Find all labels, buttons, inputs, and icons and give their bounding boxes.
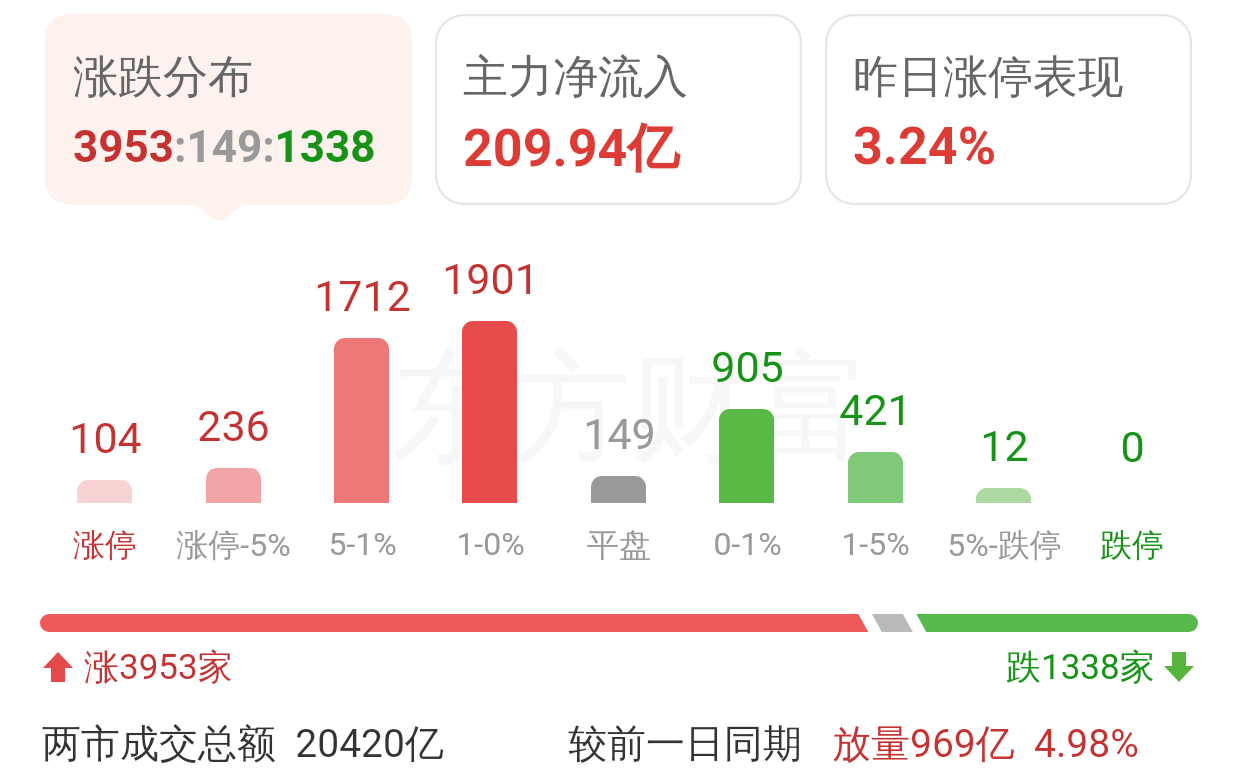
staticText: 0 [1120,422,1145,472]
staticText: 涨停 [73,525,137,565]
staticText: 跌1338家 [1006,645,1155,689]
staticText: 跌停 [1100,525,1164,565]
staticText: 昨日涨停表现 [853,49,1123,106]
button[interactable]: 涨跌分布 [45,14,412,223]
staticText: 东方财富 [391,333,871,484]
staticText: 0-1% [713,525,782,563]
staticText: 1901 [442,254,539,304]
staticText: 5%-跌停 [947,525,1062,565]
staticText: 放量969亿 4.98% [832,719,1139,768]
other: 上涨 [43,652,73,682]
staticText: 3953:149:1338 [73,121,376,173]
staticText: 较前一日同期 [568,719,802,768]
button[interactable]: 主力净流入 [435,14,802,205]
button[interactable]: 上涨 [43,645,233,689]
other: 下跌 [1164,652,1194,682]
other: 涨跌家数比例 [40,614,1198,632]
staticText: 209.94亿 [463,116,680,182]
staticText: 涨跌分布 [73,49,253,106]
staticText: 5-1% [328,525,397,563]
staticText: 1-5% [841,525,910,563]
staticText: 12 [980,421,1029,471]
button[interactable]: 昨日涨停表现 [825,14,1192,205]
staticText: 1712 [314,271,411,321]
staticText: 涨3953家 [84,645,233,689]
staticText: 涨停-5% [176,525,291,565]
button[interactable]: 跌1338家 [1006,645,1194,689]
staticText: 平盘 [587,525,651,565]
staticText: 主力净流入 [463,49,688,106]
staticText: 236 [197,401,270,451]
staticText: 149 [583,409,656,459]
staticText: 104 [69,413,142,463]
staticText: 两市成交总额 20420亿 [42,719,444,768]
staticText: 421 [839,385,912,435]
staticText: 1-0% [456,525,525,563]
staticText: 905 [711,342,784,392]
staticText: 3.24% [853,116,997,177]
